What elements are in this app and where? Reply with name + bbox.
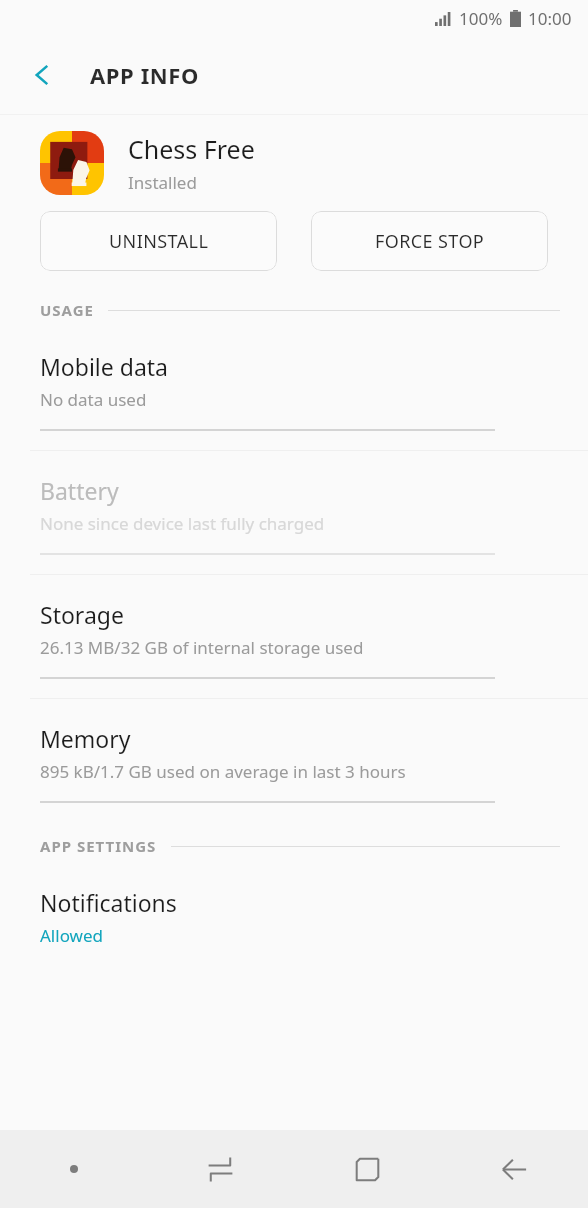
button[interactable]: Back — [441, 1130, 588, 1208]
button[interactable]: Notifications — [0, 863, 588, 947]
staticText: Notifications — [40, 887, 177, 918]
staticText: 10:00 — [528, 7, 572, 30]
staticText: Installed — [128, 171, 197, 194]
staticText: None since device last fully charged — [40, 512, 325, 535]
staticText: 100% — [459, 7, 503, 30]
button[interactable]: Recent apps — [147, 1130, 294, 1208]
staticText: No data used — [40, 388, 147, 411]
staticText: UNINSTALL — [109, 229, 209, 254]
staticText: Battery — [40, 475, 119, 506]
button[interactable]: UNINSTALL — [40, 211, 277, 271]
staticText: APP SETTINGS — [40, 836, 157, 856]
staticText: Storage — [40, 599, 124, 630]
staticText: Mobile data — [40, 351, 168, 382]
button[interactable]: Memory — [0, 699, 588, 803]
button[interactable]: Navigate up — [16, 49, 68, 101]
button[interactable]: Mobile data — [0, 327, 588, 431]
staticText: USAGE — [40, 300, 94, 320]
button[interactable]: Home — [294, 1130, 441, 1208]
staticText: FORCE STOP — [375, 229, 485, 254]
staticText: Chess Free — [128, 132, 255, 166]
staticText: 26.13 MB/32 GB of internal storage used — [40, 636, 364, 659]
staticText: 895 kB/1.7 GB used on average in last 3 … — [40, 760, 406, 783]
button[interactable]: More options — [0, 1130, 147, 1208]
button[interactable]: Storage — [0, 575, 588, 679]
staticText: APP INFO — [90, 60, 199, 90]
staticText: Allowed — [40, 924, 103, 947]
button[interactable]: FORCE STOP — [311, 211, 548, 271]
button[interactable]: Battery — [0, 451, 588, 555]
staticText: Memory — [40, 723, 131, 754]
